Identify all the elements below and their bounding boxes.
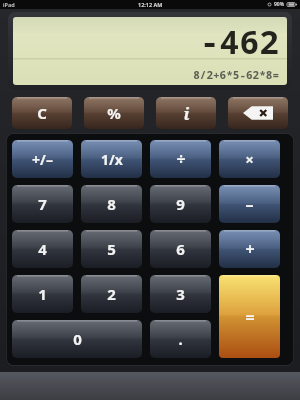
button[interactable]: =	[219, 275, 280, 358]
button[interactable]: ÷	[150, 140, 211, 178]
staticText: 5	[107, 239, 116, 259]
button[interactable]: ×	[219, 140, 280, 178]
button[interactable]: i	[156, 97, 216, 129]
staticText: 12:12 AM	[138, 1, 163, 8]
staticText: 2	[107, 284, 116, 304]
button[interactable]: +	[219, 230, 280, 268]
button[interactable]: 5	[81, 230, 142, 268]
staticText: 0	[73, 329, 82, 349]
staticText: +/–	[32, 150, 53, 169]
button[interactable]: 0	[12, 320, 142, 358]
staticText: .	[178, 329, 183, 349]
staticText: 7	[38, 194, 47, 214]
button[interactable]: C	[12, 97, 72, 129]
staticText: -462	[199, 19, 279, 64]
button[interactable]: +/–	[12, 140, 73, 178]
button[interactable]: %	[84, 97, 144, 129]
staticText: i	[183, 102, 190, 125]
staticText: %	[107, 103, 121, 123]
button[interactable]: 7	[12, 185, 73, 223]
staticText: 1/x	[101, 150, 123, 169]
staticText: 90%	[274, 1, 285, 8]
staticText: 1	[38, 284, 47, 304]
staticText: 6	[176, 239, 185, 259]
button[interactable]: 8	[81, 185, 142, 223]
button[interactable]: Backspace	[228, 97, 288, 129]
button[interactable]: .	[150, 320, 211, 358]
button[interactable]: 3	[150, 275, 211, 313]
staticText: iPad	[3, 1, 15, 8]
staticText: 8	[107, 194, 116, 214]
staticText: 9	[176, 194, 185, 214]
staticText: 8/2+6*5-62*8=	[193, 67, 279, 82]
button[interactable]: 4	[12, 230, 73, 268]
staticText: ÷	[176, 148, 186, 170]
button[interactable]: –	[219, 185, 280, 223]
button[interactable]: 1/x	[81, 140, 142, 178]
staticText: =	[245, 306, 255, 328]
staticText: C	[37, 103, 47, 123]
staticText: +	[245, 238, 255, 260]
button[interactable]: 6	[150, 230, 211, 268]
staticText: ×	[245, 149, 254, 169]
button[interactable]: 9	[150, 185, 211, 223]
staticText: –	[245, 193, 254, 215]
button[interactable]: 2	[81, 275, 142, 313]
button[interactable]: 1	[12, 275, 73, 313]
staticText: 4	[38, 239, 47, 259]
staticText: 3	[176, 284, 185, 304]
